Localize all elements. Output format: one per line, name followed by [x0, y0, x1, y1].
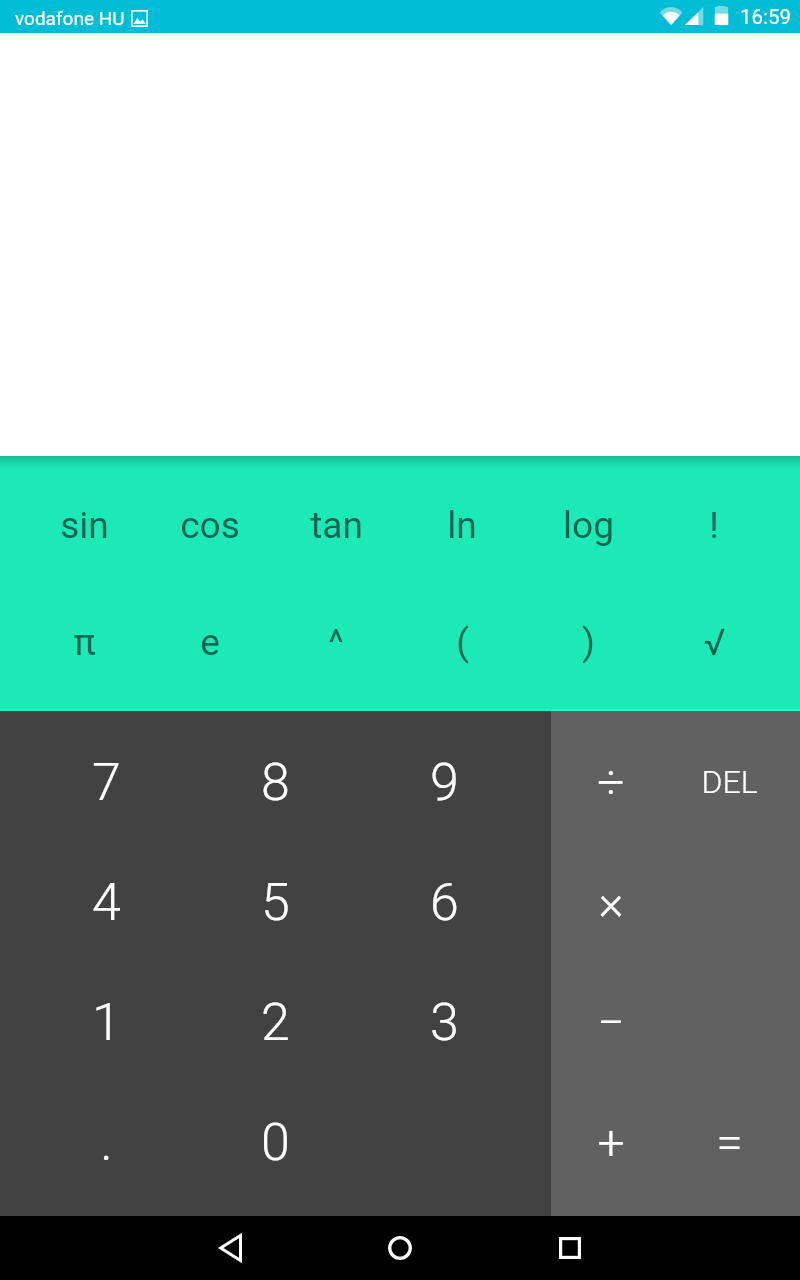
- button[interactable]: power: [273, 584, 399, 701]
- button[interactable]: equals: [670, 1082, 789, 1202]
- staticText: π: [73, 621, 96, 664]
- staticText: e: [200, 621, 220, 664]
- button[interactable]: Recent apps: [513, 1216, 627, 1280]
- staticText: √: [703, 621, 726, 664]
- staticText: 9: [430, 752, 459, 813]
- button[interactable]: open bracket: [399, 584, 525, 701]
- button[interactable]: factorial: [651, 467, 777, 584]
- staticText: 7: [92, 752, 121, 813]
- button[interactable]: .: [21, 1082, 191, 1202]
- button[interactable]: 0: [191, 1082, 360, 1202]
- button[interactable]: close bracket: [525, 584, 651, 701]
- staticText: ): [582, 621, 595, 664]
- staticText: −: [597, 994, 625, 1050]
- staticText: ÷: [597, 754, 625, 810]
- button[interactable]: add: [551, 1082, 670, 1202]
- staticText: vodafone HU: [15, 7, 125, 29]
- staticText: 2: [261, 992, 290, 1053]
- staticText: tan: [310, 504, 363, 547]
- button[interactable]: 3: [360, 962, 529, 1082]
- button[interactable]: 1: [21, 962, 191, 1082]
- button[interactable]: divide: [551, 722, 670, 842]
- staticText: 3: [430, 992, 459, 1053]
- button[interactable]: 2: [191, 962, 360, 1082]
- staticText: 1: [92, 992, 121, 1053]
- staticText: ln: [447, 504, 477, 547]
- staticText: DEL: [701, 763, 758, 801]
- staticText: ^: [328, 621, 344, 664]
- staticText: (: [456, 621, 469, 664]
- staticText: 4: [92, 872, 121, 933]
- button[interactable]: 9: [360, 722, 529, 842]
- staticText: sin: [60, 504, 109, 547]
- staticText: !: [709, 504, 719, 547]
- staticText: 6: [430, 872, 459, 933]
- button[interactable]: 7: [21, 722, 191, 842]
- staticText: ×: [598, 874, 624, 930]
- staticText: 16:59: [740, 5, 792, 29]
- button[interactable]: e: [147, 584, 273, 701]
- button[interactable]: delete: [670, 722, 789, 842]
- button[interactable]: 4: [21, 842, 191, 962]
- staticText: 5: [261, 872, 290, 933]
- staticText: =: [716, 1114, 743, 1170]
- button[interactable]: cos: [147, 467, 273, 584]
- button[interactable]: multiply: [551, 842, 670, 962]
- staticText: 8: [261, 752, 290, 813]
- button[interactable]: sin: [22, 467, 147, 584]
- button[interactable]: Home: [343, 1216, 457, 1280]
- staticText: log: [563, 504, 614, 547]
- staticText: +: [597, 1114, 625, 1170]
- button[interactable]: ln: [399, 467, 525, 584]
- button[interactable]: square root: [651, 584, 777, 701]
- button[interactable]: subtract: [551, 962, 670, 1082]
- button[interactable]: Back: [173, 1216, 287, 1280]
- staticText: cos: [180, 504, 240, 547]
- button[interactable]: 8: [191, 722, 360, 842]
- button[interactable]: tan: [273, 467, 399, 584]
- button[interactable]: log: [525, 467, 651, 584]
- staticText: 0: [261, 1112, 290, 1173]
- staticText: .: [100, 1112, 113, 1173]
- button[interactable]: 6: [360, 842, 529, 962]
- button[interactable]: pi: [22, 584, 147, 701]
- button[interactable]: 5: [191, 842, 360, 962]
